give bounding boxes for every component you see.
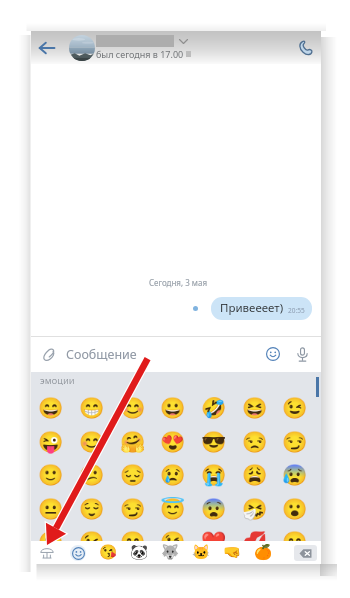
- button[interactable]: Emoji: [112, 425, 153, 458]
- button[interactable]: Attach file: [39, 344, 59, 364]
- button[interactable]: Emoji: [152, 391, 193, 424]
- staticText: 😊: [120, 396, 146, 420]
- button[interactable]: Emoji: [274, 525, 315, 541]
- button[interactable]: Voice message: [292, 344, 312, 364]
- staticText: 😮: [282, 497, 308, 521]
- button[interactable]: Emoji: [234, 425, 275, 458]
- button[interactable]: Emoji: [193, 525, 234, 541]
- button[interactable]: Emoji: [274, 458, 315, 491]
- button[interactable]: Emoji: [234, 391, 275, 424]
- button[interactable]: Emoji: [112, 492, 153, 525]
- staticText: 🍊: [254, 544, 273, 561]
- button[interactable]: Category 5: [155, 541, 186, 564]
- staticText: 😍: [160, 430, 186, 454]
- button[interactable]: Emoji: [234, 525, 275, 541]
- button[interactable]: Backspace: [294, 545, 317, 561]
- staticText: 😐: [38, 497, 64, 521]
- staticText: 😁: [120, 530, 146, 541]
- staticText: 🤣: [201, 396, 227, 420]
- button[interactable]: Emoji: [31, 458, 71, 491]
- button[interactable]: Emoji: [193, 492, 234, 525]
- button[interactable]: Emoji: [152, 492, 193, 525]
- button[interactable]: Emoji: [31, 492, 71, 525]
- button[interactable]: Emoji: [31, 391, 71, 424]
- staticText: 🐱: [192, 544, 211, 561]
- button[interactable]: Emoji: [112, 391, 153, 424]
- staticText: 😏: [120, 497, 146, 521]
- staticText: 😒: [242, 430, 268, 454]
- staticText: 20:55: [288, 306, 305, 315]
- button[interactable]: Category 6: [186, 541, 217, 564]
- staticText: 😇: [160, 497, 186, 521]
- staticText: 😘: [160, 530, 186, 541]
- staticText: 😜: [38, 430, 64, 454]
- staticText: 😉: [282, 396, 308, 420]
- staticText: 🤜: [223, 544, 242, 561]
- button[interactable]: Emoji: [112, 525, 153, 541]
- button[interactable]: Emoji: [152, 425, 193, 458]
- button[interactable]: Emoji: [71, 391, 112, 424]
- staticText: ЭМОЦИИ: [40, 377, 75, 387]
- button[interactable]: Emoji: [71, 492, 112, 525]
- staticText: 😩: [242, 463, 268, 487]
- button[interactable]: Emoji: [193, 425, 234, 458]
- staticText: 😢: [160, 463, 186, 487]
- button[interactable]: Emoji: [71, 458, 112, 491]
- button[interactable]: Emoji: [274, 391, 315, 424]
- staticText: 🙂: [38, 463, 64, 487]
- button[interactable]: Emoji: [274, 425, 315, 458]
- staticText: Сегодня, 3 мая: [35, 277, 321, 288]
- button[interactable]: Emoji: [193, 458, 234, 491]
- staticText: 🐺: [161, 544, 180, 561]
- staticText: 😎: [201, 430, 227, 454]
- staticText: 😏: [282, 430, 308, 454]
- button[interactable]: Emoji: [263, 344, 283, 364]
- staticText: 🐼: [130, 544, 149, 561]
- button[interactable]: Category 3: [93, 541, 124, 564]
- staticText: 😰: [282, 463, 308, 487]
- button[interactable]: Emoji: [71, 525, 112, 541]
- staticText: 😘: [99, 544, 118, 561]
- button[interactable]: Emoji: [274, 492, 315, 525]
- button[interactable]: Category 8: [248, 541, 279, 564]
- staticText: 😊: [79, 430, 105, 454]
- button[interactable]: Emoji: [71, 425, 112, 458]
- staticText: 😌: [79, 497, 105, 521]
- staticText: Привеееет): [220, 300, 284, 316]
- button[interactable]: Emoji: [152, 458, 193, 491]
- staticText: 😔: [120, 463, 146, 487]
- button[interactable]: Category 4: [124, 541, 155, 564]
- staticText: 😬: [38, 530, 64, 541]
- button[interactable]: Emoji: [31, 525, 71, 541]
- button[interactable]: Emoji: [112, 458, 153, 491]
- staticText: Сообщение: [66, 346, 137, 363]
- staticText: 😊: [282, 530, 308, 541]
- button[interactable]: Emoji: [234, 492, 275, 525]
- staticText: 😭: [201, 463, 227, 487]
- staticText: 😨: [201, 497, 227, 521]
- staticText: 😀: [160, 396, 186, 420]
- button[interactable]: Emoji: [152, 525, 193, 541]
- staticText: 😕: [79, 463, 105, 487]
- staticText: 🤗: [120, 430, 146, 454]
- staticText: 😁: [79, 396, 105, 420]
- button[interactable]: Привеееет): [211, 297, 312, 320]
- staticText: ❤️: [201, 530, 227, 541]
- button[interactable]: Category 7: [217, 541, 248, 564]
- staticText: 😉: [79, 530, 105, 541]
- staticText: 🤧: [242, 497, 268, 521]
- staticText: 😄: [38, 396, 64, 420]
- button[interactable]: Emoji: [234, 458, 275, 491]
- button[interactable]: Smileys: [62, 541, 93, 564]
- button[interactable]: Back: [31, 31, 62, 64]
- button[interactable]: Call: [289, 31, 321, 64]
- button[interactable]: Emoji: [31, 425, 71, 458]
- button[interactable]: Emoji: [193, 391, 234, 424]
- staticText: был сегодня в 17.00: [96, 48, 184, 60]
- button[interactable]: Category 1: [31, 541, 62, 564]
- staticText: 😆: [242, 396, 268, 420]
- staticText: 💋: [242, 530, 268, 541]
